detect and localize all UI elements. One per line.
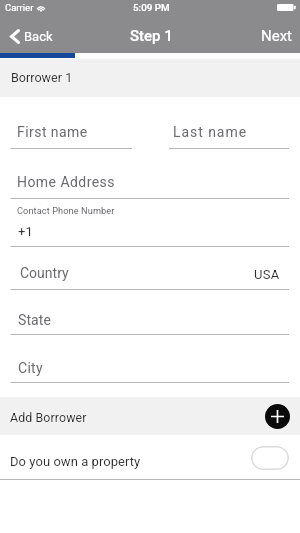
staticText: Step 1 [130, 27, 173, 45]
staticText: Carrier [5, 2, 34, 13]
staticText: Next [261, 27, 293, 45]
staticText: +1 [18, 224, 33, 239]
button[interactable]: Country [0, 247, 300, 290]
staticText: 5:09 PM [133, 2, 170, 13]
button[interactable]: First name [0, 97, 132, 149]
staticText: Do you own a property [10, 454, 141, 469]
staticText: Home Address [17, 174, 115, 190]
staticText: USA [254, 267, 280, 282]
staticText: Contact Phone Number [17, 205, 115, 216]
button[interactable]: Add Borrower [0, 397, 300, 435]
staticText: State [18, 312, 52, 328]
button[interactable]: Do you own a property [0, 435, 300, 480]
staticText: Borrower 1 [11, 70, 73, 85]
staticText: Country [20, 265, 69, 281]
button[interactable]: Contact Phone Number [0, 199, 300, 247]
other: Battery [277, 4, 296, 11]
button[interactable]: Add Borrower [265, 404, 290, 429]
button[interactable]: City [0, 335, 300, 383]
button[interactable]: Back [0, 20, 61, 53]
button[interactable]: Home Address [0, 149, 300, 199]
button[interactable]: Do you own a property [251, 446, 289, 470]
other: Wi-Fi [36, 4, 46, 12]
button[interactable]: Last name [169, 97, 300, 149]
staticText: City [18, 360, 43, 376]
staticText: Add Borrower [10, 410, 87, 425]
staticText: First name [17, 124, 88, 140]
staticText: Back [24, 29, 53, 44]
staticText: Last name [173, 124, 248, 140]
button[interactable]: Next [252, 20, 300, 53]
button[interactable]: State [0, 290, 300, 335]
